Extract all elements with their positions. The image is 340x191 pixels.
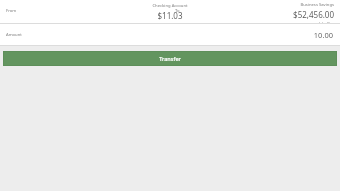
button[interactable]: From — [0, 0, 100, 14]
button[interactable]: Amount — [0, 24, 340, 45]
staticText: To — [175, 8, 180, 14]
staticText: Amount — [6, 32, 22, 38]
staticText: $11.03 — [115, 10, 225, 21]
staticText: Business Savings — [220, 2, 334, 8]
staticText: Checking Account — [115, 3, 225, 9]
button[interactable]: Business Savings — [220, 2, 334, 23]
staticText: 10.00 — [313, 30, 333, 40]
staticText: From — [6, 8, 17, 14]
staticText: John Doe — [220, 21, 334, 23]
button[interactable]: To — [175, 8, 180, 14]
staticText: $52,456.00 — [220, 9, 334, 20]
button[interactable]: Checking Account — [115, 3, 225, 21]
staticText: Transfer — [159, 55, 181, 62]
button[interactable]: Transfer — [4, 52, 336, 65]
